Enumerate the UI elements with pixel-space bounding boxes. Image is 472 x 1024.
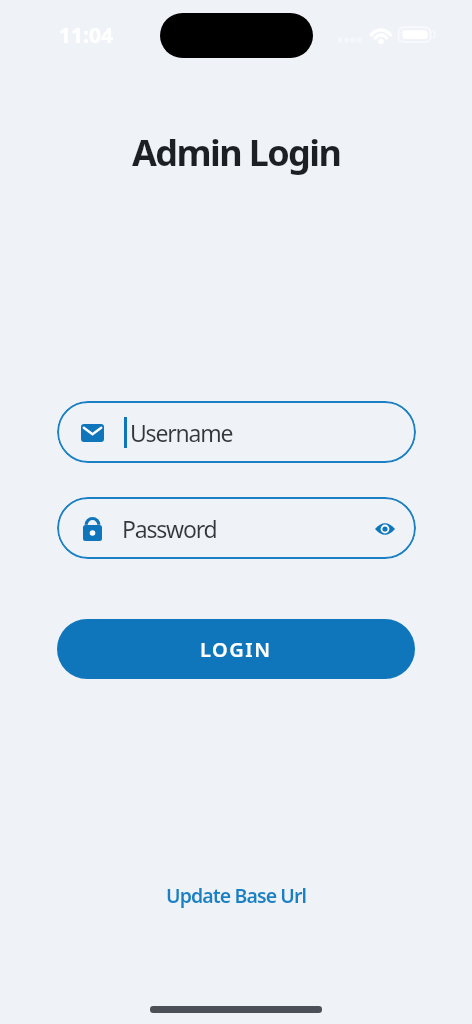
- staticText: LOGIN: [200, 636, 272, 663]
- button[interactable]: LOGIN: [57, 619, 415, 679]
- staticText: Username: [130, 417, 233, 448]
- staticText: Update Base Url: [166, 882, 307, 909]
- button[interactable]: Password: [57, 497, 416, 559]
- staticText: Password: [122, 513, 217, 544]
- button[interactable]: Username: [57, 401, 416, 463]
- button[interactable]: Update Base Url: [166, 882, 307, 909]
- staticText: Admin Login: [132, 128, 341, 177]
- staticText: 11:04: [59, 21, 113, 50]
